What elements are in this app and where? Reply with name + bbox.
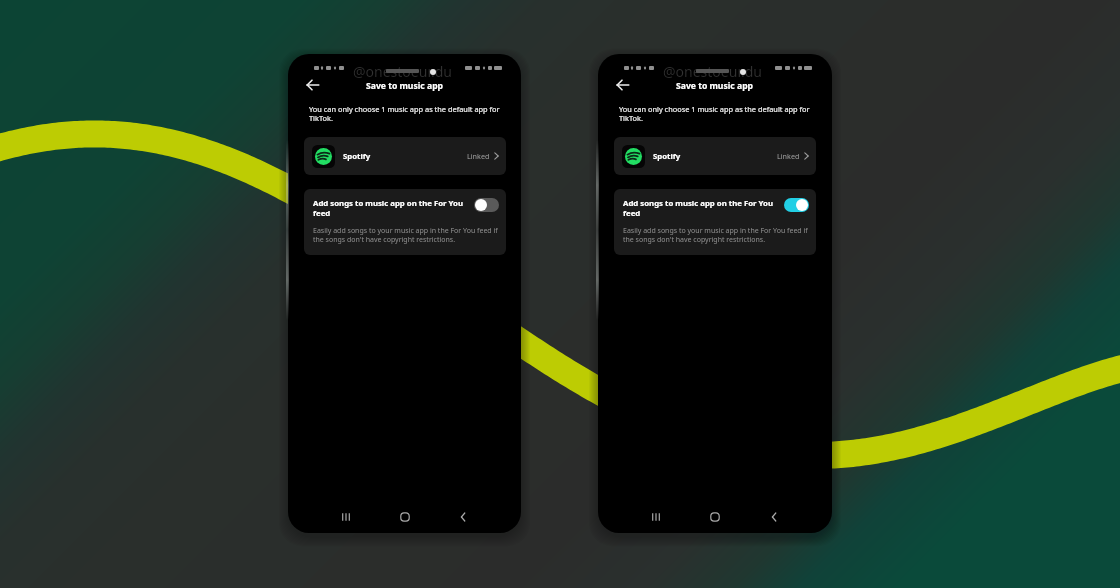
staticText: @onestoeur.du <box>663 62 762 81</box>
button[interactable]: Back <box>452 506 474 528</box>
staticText: Save to music app <box>676 80 754 92</box>
button[interactable]: Spotify <box>304 137 506 175</box>
staticText: Easily add songs to your music app in th… <box>623 226 811 244</box>
staticText: Spotify <box>653 151 681 162</box>
button[interactable]: Recents <box>645 506 667 528</box>
staticText: Easily add songs to your music app in th… <box>313 226 501 244</box>
button[interactable]: Back <box>302 74 324 96</box>
button[interactable]: Recents <box>335 506 357 528</box>
staticText: You can only choose 1 music app as the d… <box>619 104 815 123</box>
staticText: Spotify <box>343 151 371 162</box>
button[interactable]: Home <box>704 506 726 528</box>
staticText: You can only choose 1 music app as the d… <box>309 104 505 123</box>
button[interactable]: Back <box>612 74 634 96</box>
staticText: Linked <box>467 151 490 161</box>
button[interactable]: Toggle add songs to music app <box>784 198 809 212</box>
button[interactable]: Home <box>394 506 416 528</box>
staticText: Add songs to music app on the For You fe… <box>623 198 779 218</box>
button[interactable]: Spotify <box>614 137 816 175</box>
staticText: @onestoeur.du <box>353 62 452 81</box>
staticText: Add songs to music app on the For You fe… <box>313 198 469 218</box>
button[interactable]: Back <box>763 506 785 528</box>
staticText: Save to music app <box>366 80 444 92</box>
staticText: Linked <box>777 151 800 161</box>
button[interactable]: Toggle add songs to music app <box>474 198 499 212</box>
